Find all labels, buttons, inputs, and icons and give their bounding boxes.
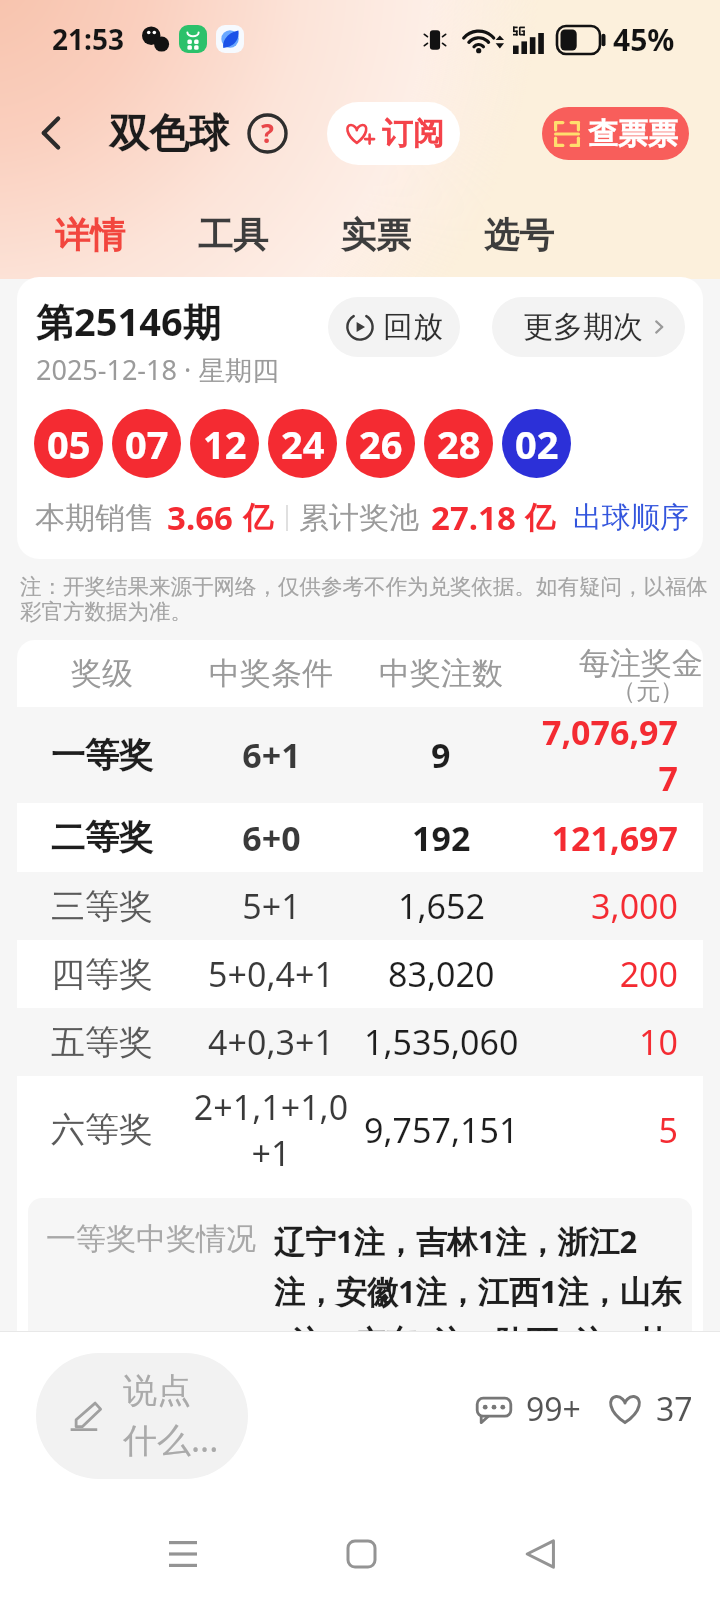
staticText: 3.66: [167, 495, 233, 540]
staticText: 回放: [383, 308, 443, 346]
button[interactable]: 查票票: [542, 107, 689, 160]
button[interactable]: 四等奖: [17, 940, 703, 1008]
staticText: 12: [203, 418, 247, 470]
button[interactable]: 说点 什么...: [36, 1353, 248, 1479]
button[interactable]: 五等奖: [17, 1008, 703, 1076]
staticText: 奖级: [71, 654, 133, 693]
button[interactable]: 37: [605, 1387, 693, 1431]
staticText: 一等奖中奖情况: [46, 1220, 256, 1258]
staticText: 7,076,977: [530, 709, 678, 801]
button[interactable]: 详情: [55, 205, 125, 265]
staticText: 每注奖金: [579, 644, 703, 683]
staticText: 详情: [55, 213, 125, 257]
button[interactable]: 订阅: [327, 102, 460, 165]
staticText: 26: [359, 418, 403, 470]
staticText: 工具: [198, 213, 268, 257]
staticText: 六等奖: [51, 1108, 153, 1151]
button[interactable]: Recent apps: [135, 1506, 231, 1602]
staticText: 查票票: [588, 115, 678, 153]
staticText: 3,000: [591, 883, 678, 929]
staticText: 6+0: [242, 815, 301, 861]
staticText: 4+0,3+1: [208, 1019, 334, 1065]
staticText: 9: [431, 732, 451, 778]
staticText: 说点 什么...: [123, 1369, 219, 1463]
staticText: 37: [656, 1387, 693, 1431]
button[interactable]: 更多期次: [492, 297, 685, 357]
staticText: 45%: [613, 19, 675, 60]
button[interactable]: 99+: [474, 1387, 581, 1431]
staticText: 双色球: [109, 108, 229, 158]
button[interactable]: 实票: [341, 205, 411, 265]
staticText: 121,697: [551, 815, 678, 861]
staticText: 99+: [526, 1387, 581, 1431]
staticText: 1,535,060: [364, 1019, 519, 1065]
button[interactable]: 工具: [198, 205, 268, 265]
staticText: 亿: [243, 499, 273, 537]
staticText: 200: [619, 951, 678, 997]
staticText: 10: [639, 1019, 678, 1065]
staticText: 一等奖: [51, 734, 153, 777]
staticText: 21:53: [52, 20, 124, 58]
staticText: 本期销售: [35, 499, 155, 537]
staticText: 第25146期: [36, 295, 221, 347]
staticText: 出球顺序: [573, 499, 689, 536]
staticText: 中奖条件: [209, 654, 333, 693]
button[interactable]: 选号: [484, 205, 554, 265]
staticText: 83,020: [388, 951, 495, 997]
staticText: 五等奖: [51, 1021, 153, 1064]
staticText: 更多期次: [523, 308, 643, 346]
button[interactable]: 六等奖: [17, 1076, 703, 1183]
staticText: 累计奖池: [299, 499, 419, 537]
staticText: 订阅: [382, 114, 444, 153]
staticText: 四等奖: [51, 953, 153, 996]
staticText: 实票: [341, 213, 411, 257]
staticText: 三等奖: [51, 885, 153, 928]
staticText: 5+0,4+1: [208, 951, 334, 997]
staticText: 二等奖: [51, 816, 153, 859]
staticText: 28: [437, 418, 481, 470]
staticText: 192: [412, 815, 471, 861]
staticText: 5+1: [242, 883, 301, 929]
button[interactable]: 二等奖: [17, 803, 703, 872]
button[interactable]: 出球顺序: [573, 499, 689, 536]
staticText: 27.18: [431, 495, 516, 540]
staticText: （元）: [612, 676, 684, 706]
button[interactable]: Help: [245, 111, 290, 156]
button[interactable]: Back: [13, 95, 89, 171]
button[interactable]: 一等奖: [17, 707, 703, 803]
button[interactable]: 回放: [328, 297, 460, 357]
staticText: 辽宁1注，吉林1注，浙江2注，安徽1注，江西1注，山东1注，广东1注，陕西1注，…: [274, 1220, 686, 1348]
staticText: 05: [47, 418, 91, 470]
staticText: 2025-12-18 · 星期四: [36, 351, 280, 388]
staticText: ?: [261, 114, 274, 151]
staticText: 1,652: [398, 883, 485, 929]
staticText: 2+1,1+1,0+1: [186, 1084, 356, 1176]
staticText: 9,757,151: [364, 1107, 519, 1153]
button[interactable]: Home: [313, 1506, 409, 1602]
staticText: 选号: [484, 213, 554, 257]
staticText: 5: [658, 1107, 678, 1153]
button[interactable]: 三等奖: [17, 872, 703, 940]
staticText: 亿: [525, 499, 555, 537]
staticText: 24: [281, 418, 325, 470]
staticText: 中奖注数: [379, 654, 503, 693]
button[interactable]: Back: [492, 1506, 588, 1602]
staticText: 6+1: [242, 732, 301, 778]
staticText: 07: [125, 418, 169, 470]
staticText: 02: [515, 418, 559, 470]
staticText: 注：开奖结果来源于网络，仅供参考不作为兑奖依据。如有疑问，以福体 彩官方数据为准…: [20, 573, 708, 625]
